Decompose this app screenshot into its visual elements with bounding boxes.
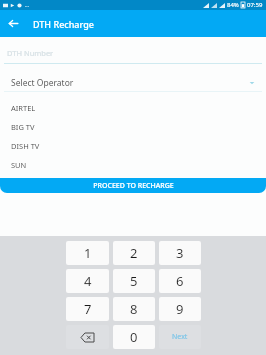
staticText: 2 bbox=[130, 244, 138, 262]
button[interactable]: DTH Number bbox=[7, 43, 259, 63]
button[interactable]: 0 bbox=[113, 325, 155, 349]
button[interactable]: 8 bbox=[113, 297, 155, 321]
button[interactable]: 5 bbox=[113, 269, 155, 293]
staticText: 8 bbox=[130, 300, 138, 318]
button[interactable]: 1 bbox=[66, 241, 109, 265]
staticText: PROCEED TO RECHARGE bbox=[93, 181, 174, 191]
button[interactable]: 9 bbox=[159, 297, 201, 321]
button[interactable]: 2 bbox=[113, 241, 155, 265]
button[interactable]: Backspace bbox=[66, 325, 109, 349]
button[interactable]: Select Operator bbox=[11, 75, 255, 91]
staticText: AIRTEL bbox=[11, 103, 36, 113]
staticText: DISH TV bbox=[11, 141, 40, 151]
staticText: DTH Recharge bbox=[33, 18, 94, 30]
staticText: ... bbox=[25, 2, 30, 9]
staticText: 4 bbox=[84, 272, 92, 290]
button[interactable]: 6 bbox=[159, 269, 201, 293]
button[interactable]: SUN bbox=[11, 155, 255, 174]
staticText: 5 bbox=[130, 272, 138, 290]
button[interactable]: PROCEED TO RECHARGE bbox=[0, 178, 266, 193]
button[interactable]: Next bbox=[159, 325, 201, 349]
staticText: Select Operator bbox=[11, 77, 74, 89]
staticText: 0 bbox=[130, 328, 138, 346]
button[interactable]: DISH TV bbox=[11, 136, 255, 155]
button[interactable]: AIRTEL bbox=[11, 98, 255, 117]
staticText: 07:59 bbox=[247, 1, 263, 9]
button[interactable]: Back bbox=[0, 10, 27, 37]
staticText: 9 bbox=[176, 300, 184, 318]
staticText: SUN bbox=[11, 160, 27, 170]
staticText: 84% bbox=[227, 1, 239, 9]
staticText: Next bbox=[172, 332, 188, 342]
staticText: 1 bbox=[84, 244, 92, 262]
button[interactable]: BIG TV bbox=[11, 117, 255, 136]
staticText: BIG TV bbox=[11, 122, 35, 132]
staticText: 6 bbox=[176, 272, 184, 290]
button[interactable]: 3 bbox=[159, 241, 201, 265]
button[interactable]: 7 bbox=[66, 297, 109, 321]
button[interactable]: 4 bbox=[66, 269, 109, 293]
staticText: 3 bbox=[176, 244, 184, 262]
staticText: DTH Number bbox=[7, 48, 54, 58]
staticText: 7 bbox=[84, 300, 92, 318]
